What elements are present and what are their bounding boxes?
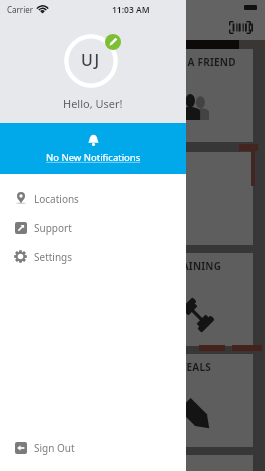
staticText: UJ <box>81 49 101 71</box>
staticText: Locations <box>34 192 79 206</box>
button[interactable]: DEALS <box>137 354 253 447</box>
button[interactable]: Settings <box>0 242 186 271</box>
button[interactable] <box>137 455 253 471</box>
button[interactable]: Sign Out <box>0 433 186 462</box>
button[interactable]: TRAINING <box>137 253 253 346</box>
staticText: Settings <box>34 250 73 264</box>
staticText: Carrier <box>7 4 34 15</box>
button[interactable]: Locations <box>0 184 186 213</box>
button[interactable]: Profile <box>64 34 118 88</box>
staticText: Support <box>34 221 72 235</box>
button[interactable] <box>137 152 253 245</box>
button[interactable]: No New Notifications <box>0 123 186 174</box>
button[interactable]: Scan barcode <box>229 21 251 34</box>
button[interactable]: REFER A FRIEND <box>137 49 253 142</box>
staticText: DEALS <box>179 360 211 374</box>
staticText: REFER A FRIEND <box>154 55 236 69</box>
staticText: Sign Out <box>34 441 75 455</box>
button[interactable]: Edit profile <box>105 34 121 50</box>
button[interactable]: Support <box>0 213 186 242</box>
staticText: 11:03 AM <box>112 4 150 16</box>
staticText: TRAINING <box>169 259 222 273</box>
staticText: Hello, User! <box>63 96 123 111</box>
staticText: No New Notifications <box>46 151 141 164</box>
